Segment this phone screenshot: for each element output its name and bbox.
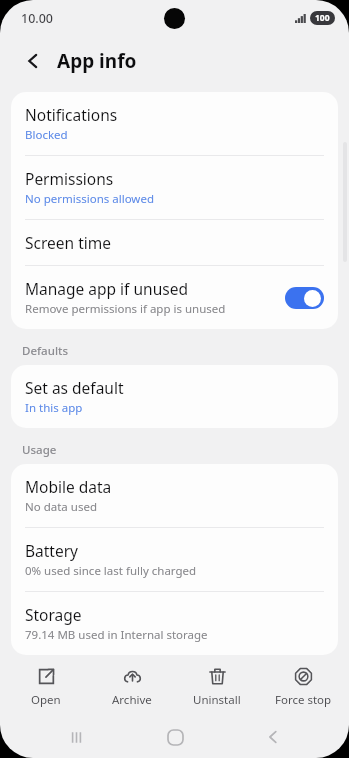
staticText: Open bbox=[31, 692, 61, 708]
staticText: No data used bbox=[25, 499, 97, 515]
staticText: Set as default bbox=[25, 377, 124, 398]
staticText: 100 bbox=[315, 12, 330, 24]
staticText: Battery bbox=[25, 540, 79, 561]
button[interactable]: Permissions bbox=[11, 156, 338, 219]
staticText: Usage bbox=[22, 442, 57, 458]
staticText: Manage app if unused bbox=[25, 278, 188, 299]
staticText: In this app bbox=[25, 400, 83, 416]
staticText: 10.00 bbox=[21, 10, 54, 27]
staticText: 79.14 MB used in Internal storage bbox=[25, 627, 208, 643]
staticText: Permissions bbox=[25, 168, 114, 189]
button[interactable]: Notifications bbox=[11, 92, 338, 155]
staticText: Notifications bbox=[25, 104, 118, 125]
staticText: No permissions allowed bbox=[25, 191, 154, 207]
button[interactable]: Screen time bbox=[11, 220, 338, 265]
staticText: Uninstall bbox=[193, 692, 241, 708]
button[interactable]: Storage bbox=[11, 592, 338, 655]
staticText: 0% used since last fully charged bbox=[25, 563, 197, 579]
button[interactable]: Set as default bbox=[11, 365, 338, 428]
button[interactable]: Manage app if unused bbox=[285, 287, 324, 309]
staticText: Archive bbox=[112, 692, 152, 708]
staticText: Defaults bbox=[22, 343, 68, 359]
button[interactable]: Home bbox=[152, 716, 198, 758]
button[interactable]: Manage app if unused bbox=[11, 266, 338, 329]
button[interactable]: Force stop bbox=[263, 664, 343, 711]
button[interactable]: Uninstall bbox=[177, 664, 257, 711]
button[interactable]: Open bbox=[6, 664, 86, 711]
button[interactable]: Archive bbox=[92, 664, 172, 711]
button[interactable]: Mobile data bbox=[11, 464, 338, 527]
button[interactable]: Recents bbox=[53, 716, 99, 758]
button[interactable]: Battery bbox=[11, 528, 338, 591]
staticText: Storage bbox=[25, 604, 82, 625]
button[interactable]: Back bbox=[250, 716, 296, 758]
button[interactable]: Back bbox=[18, 46, 48, 76]
staticText: Screen time bbox=[25, 232, 111, 253]
staticText: App info bbox=[57, 48, 137, 74]
staticText: Force stop bbox=[275, 692, 332, 708]
staticText: Blocked bbox=[25, 127, 68, 143]
staticText: Remove permissions if app is unused bbox=[25, 301, 226, 317]
staticText: Mobile data bbox=[25, 476, 112, 497]
